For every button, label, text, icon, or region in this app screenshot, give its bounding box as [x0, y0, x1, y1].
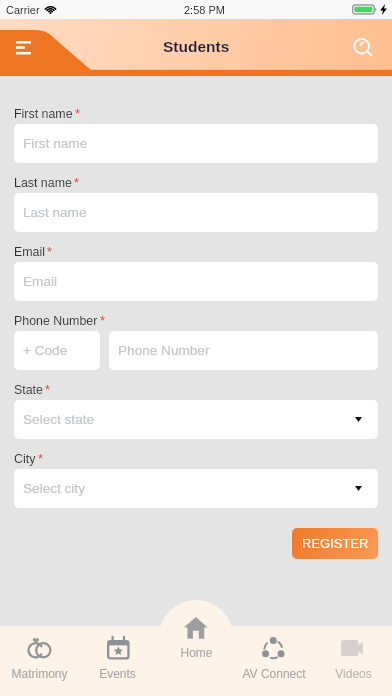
button[interactable]: Select city — [14, 469, 378, 508]
staticText: * — [38, 451, 44, 466]
button[interactable] — [0, 626, 78, 696]
staticText: Select city — [23, 481, 85, 496]
button[interactable]: First name — [14, 124, 378, 163]
staticText: First name — [14, 107, 73, 121]
staticText: Videos — [335, 667, 372, 680]
button[interactable]: Email — [14, 262, 378, 301]
button[interactable]: Select state — [14, 400, 378, 439]
staticText: REGISTER — [302, 536, 369, 551]
staticText: * — [47, 244, 53, 259]
button[interactable] — [235, 626, 313, 696]
button[interactable]: Search — [346, 31, 378, 63]
staticText: AV Connect — [242, 667, 306, 680]
staticText: State — [14, 383, 43, 397]
staticText: Home — [180, 646, 213, 659]
staticText: + Code — [23, 343, 68, 358]
button[interactable] — [314, 626, 392, 696]
button[interactable]: Menu — [6, 31, 40, 63]
staticText: * — [74, 175, 80, 190]
staticText: First name — [23, 136, 88, 151]
staticText: 2:58 PM — [184, 4, 225, 16]
staticText: Events — [99, 667, 136, 680]
staticText: * — [100, 313, 106, 328]
button[interactable]: REGISTER — [292, 528, 378, 559]
staticText: * — [75, 106, 81, 121]
staticText: Carrier — [6, 4, 40, 16]
staticText: Select state — [23, 412, 95, 427]
staticText: Email — [14, 245, 45, 259]
button[interactable]: Last name — [14, 193, 378, 232]
staticText: Last name — [14, 176, 72, 190]
button[interactable]: + Code — [14, 331, 100, 370]
staticText: Email — [23, 274, 57, 289]
staticText: * — [45, 382, 51, 397]
staticText: Matrimony — [11, 667, 68, 680]
staticText: Last name — [23, 205, 87, 220]
staticText: Phone Number — [14, 314, 98, 328]
button[interactable] — [78, 626, 156, 696]
staticText: Phone Number — [118, 343, 210, 358]
button[interactable]: Phone Number — [109, 331, 378, 370]
button[interactable] — [157, 626, 235, 696]
staticText: Students — [163, 38, 230, 55]
staticText: City — [14, 452, 36, 466]
